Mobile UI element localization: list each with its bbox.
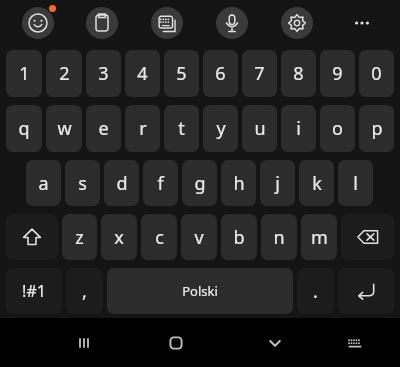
button[interactable]: i — [281, 105, 316, 152]
button[interactable]: h — [221, 160, 256, 206]
button[interactable]: 8 — [281, 50, 316, 97]
staticText: 0 — [371, 61, 382, 86]
button[interactable]: c — [141, 214, 177, 260]
button[interactable]: s — [65, 160, 100, 206]
staticText: n — [273, 225, 285, 250]
staticText: j — [275, 171, 280, 196]
button[interactable]: Voice input — [199, 0, 264, 46]
staticText: 8 — [293, 61, 304, 86]
staticText: c — [155, 225, 164, 250]
staticText: x — [114, 225, 124, 250]
button[interactable]: x — [101, 214, 137, 260]
button[interactable]: Recents — [46, 318, 122, 367]
staticText: 3 — [98, 61, 109, 86]
staticText: 1 — [19, 61, 30, 86]
staticText: t — [178, 116, 185, 141]
button[interactable]: l — [338, 160, 373, 206]
button[interactable]: More options — [329, 0, 394, 46]
button[interactable]: z — [62, 214, 97, 260]
button[interactable]: 7 — [242, 50, 277, 97]
button[interactable]: 2 — [46, 50, 82, 97]
staticText: . — [313, 279, 318, 304]
staticText: 7 — [254, 61, 265, 86]
button[interactable]: 4 — [125, 50, 160, 97]
staticText: s — [78, 171, 87, 196]
button[interactable]: Home — [122, 318, 229, 367]
staticText: e — [98, 116, 109, 141]
staticText: h — [233, 171, 245, 196]
button[interactable]: 6 — [203, 50, 238, 97]
staticText: v — [194, 225, 204, 250]
button[interactable]: e — [86, 105, 121, 152]
button[interactable]: 1 — [6, 50, 42, 97]
staticText: a — [38, 171, 49, 196]
staticText: q — [18, 116, 30, 141]
button[interactable]: v — [181, 214, 217, 260]
staticText: w — [57, 116, 72, 141]
button[interactable]: , — [66, 268, 103, 314]
button[interactable]: Settings — [264, 0, 329, 46]
staticText: b — [233, 225, 245, 250]
staticText: y — [216, 116, 226, 141]
button[interactable]: 9 — [320, 50, 355, 97]
staticText: 5 — [176, 61, 187, 86]
button[interactable]: t — [164, 105, 199, 152]
staticText: k — [312, 171, 322, 196]
button[interactable]: Switch keyboard — [320, 318, 389, 367]
button[interactable]: f — [143, 160, 178, 206]
staticText: z — [75, 225, 84, 250]
button[interactable]: m — [301, 214, 337, 260]
button[interactable]: w — [46, 105, 82, 152]
button[interactable]: d — [104, 160, 139, 206]
button[interactable]: b — [221, 214, 257, 260]
staticText: l — [353, 171, 358, 196]
button[interactable]: Hide keyboard — [229, 318, 320, 367]
staticText: u — [254, 116, 266, 141]
button[interactable]: n — [261, 214, 297, 260]
staticText: 6 — [215, 61, 226, 86]
staticText: i — [296, 116, 301, 141]
staticText: Polski — [182, 282, 218, 300]
button[interactable]: o — [320, 105, 355, 152]
button[interactable]: q — [6, 105, 42, 152]
staticText: r — [139, 116, 147, 141]
staticText: o — [332, 116, 343, 141]
button[interactable]: u — [242, 105, 277, 152]
staticText: g — [194, 171, 206, 196]
staticText: m — [311, 225, 328, 250]
staticText: p — [371, 116, 383, 141]
button[interactable]: j — [260, 160, 295, 206]
button[interactable]: Emoji — [6, 0, 70, 46]
staticText: d — [116, 171, 128, 196]
button[interactable]: Shift — [6, 214, 58, 260]
button[interactable]: r — [125, 105, 160, 152]
staticText: f — [157, 171, 164, 196]
button[interactable]: y — [203, 105, 238, 152]
button[interactable]: g — [182, 160, 217, 206]
button[interactable]: 5 — [164, 50, 199, 97]
staticText: !#1 — [22, 280, 46, 302]
button[interactable]: Keyboard modes — [134, 0, 199, 46]
button[interactable]: a — [26, 160, 61, 206]
button[interactable]: Clipboard — [70, 0, 134, 46]
staticText: 4 — [137, 61, 148, 86]
button[interactable]: 0 — [359, 50, 394, 97]
button[interactable]: Polski — [107, 268, 293, 314]
button[interactable]: 3 — [86, 50, 121, 97]
button[interactable]: k — [299, 160, 334, 206]
button[interactable]: !#1 — [6, 268, 62, 314]
button[interactable]: p — [359, 105, 394, 152]
button[interactable]: . — [297, 268, 334, 314]
button[interactable]: Backspace — [341, 214, 394, 260]
staticText: 9 — [332, 61, 343, 86]
button[interactable]: Enter — [338, 268, 394, 314]
staticText: , — [82, 279, 87, 304]
staticText: 2 — [59, 61, 70, 86]
